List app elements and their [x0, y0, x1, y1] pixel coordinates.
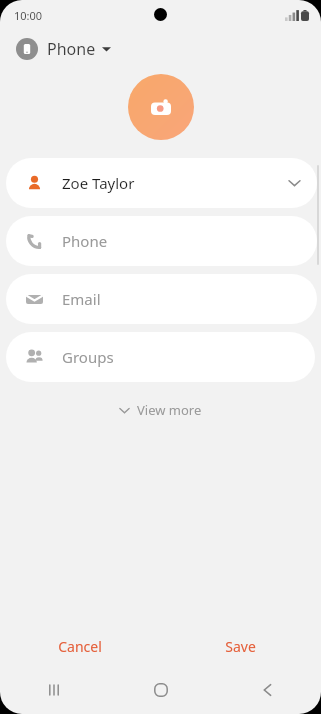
button[interactable]: Phone — [14, 34, 113, 64]
button[interactable]: Save — [160, 628, 321, 664]
button[interactable]: Add contact photo — [128, 74, 194, 140]
button[interactable]: Back — [214, 676, 321, 704]
button[interactable]: Email — [6, 274, 317, 324]
staticText: Save — [225, 637, 256, 656]
staticText: Phone — [62, 231, 108, 251]
button[interactable]: Phone — [6, 216, 317, 266]
button[interactable]: Home — [107, 676, 214, 704]
staticText: Zoe Taylor — [62, 173, 135, 193]
staticText: View more — [137, 401, 202, 419]
button[interactable]: Recents — [0, 676, 107, 704]
button[interactable]: Zoe Taylor — [6, 158, 317, 208]
staticText: Cancel — [58, 637, 102, 656]
button[interactable]: View more — [109, 396, 212, 424]
staticText: Groups — [62, 347, 114, 367]
staticText: Phone — [47, 38, 96, 60]
button[interactable]: Groups — [6, 332, 315, 382]
staticText: Email — [62, 289, 101, 309]
button[interactable]: Cancel — [0, 628, 160, 664]
staticText: 10:00 — [14, 8, 43, 23]
